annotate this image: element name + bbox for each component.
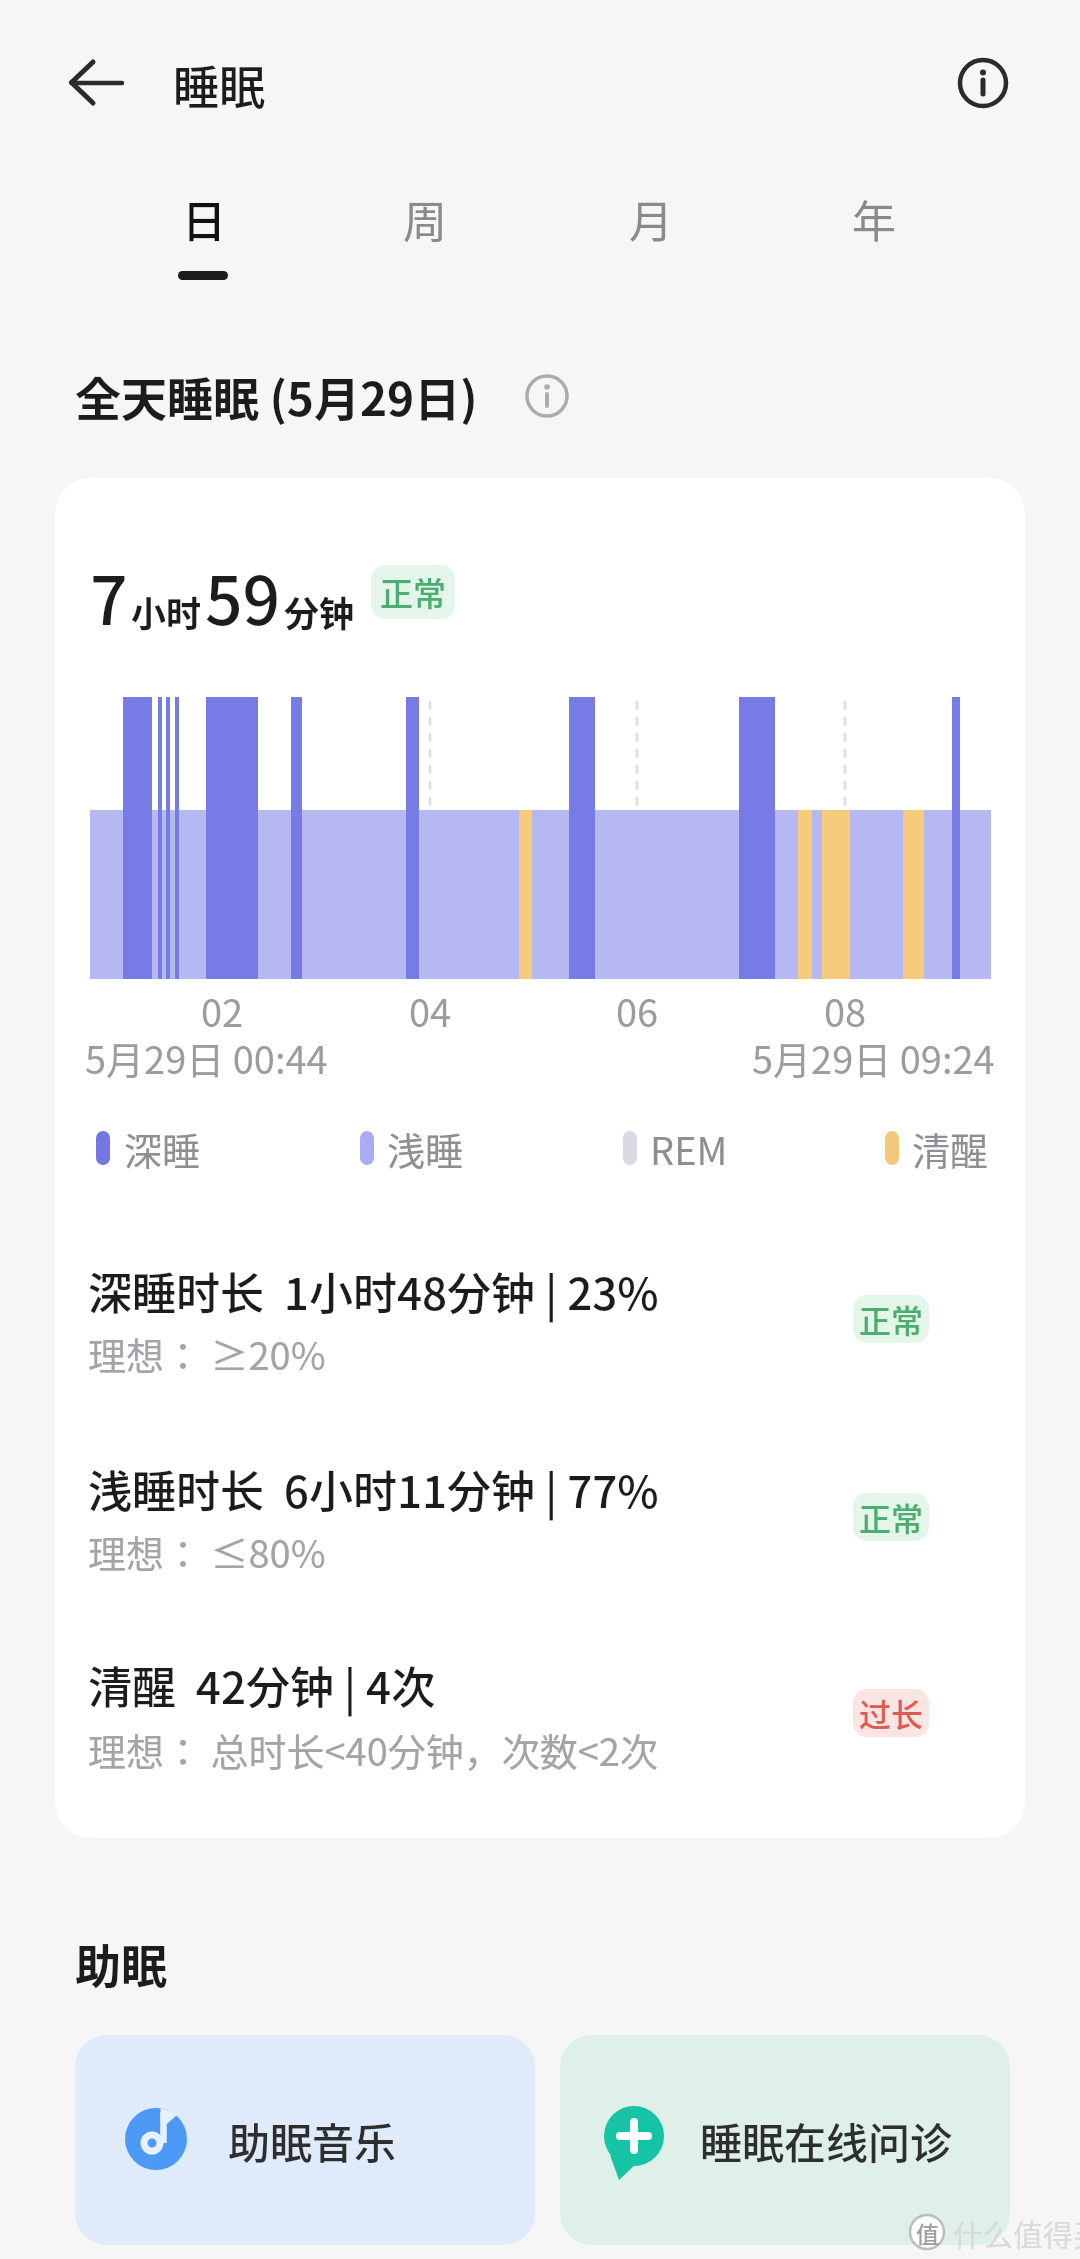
staticText: 小时	[131, 586, 202, 637]
staticText: 理想： 总时长<40分钟，次数<2次	[88, 1722, 658, 1777]
staticText: 59	[205, 548, 281, 644]
staticText: 5月29日 09:24	[752, 1030, 995, 1085]
staticText: 睡眠	[173, 51, 265, 118]
staticText: 助眠音乐	[228, 2110, 397, 2171]
staticText: 浅睡	[387, 1121, 464, 1176]
staticText: 睡眠在线问诊	[700, 2110, 953, 2171]
staticText: 深睡时长 1小时48分钟 | 23%	[88, 1259, 659, 1323]
staticText: 正常	[859, 1494, 924, 1540]
staticText: 分钟	[284, 586, 355, 637]
staticText: 清醒 42分钟 | 4次	[88, 1653, 436, 1717]
staticText: 月	[629, 187, 673, 251]
staticText: 理想： ≤80%	[88, 1524, 326, 1579]
staticText: 正常	[859, 1296, 924, 1342]
staticText: 理想： ≥20%	[88, 1326, 326, 1381]
staticText: 过长	[859, 1690, 924, 1736]
staticText: 02	[201, 983, 244, 1038]
staticText: 年	[852, 187, 896, 251]
staticText: 值	[916, 2216, 939, 2249]
staticText: 5月29日 00:44	[85, 1030, 328, 1085]
staticText: 清醒	[912, 1121, 989, 1176]
staticText: 浅睡时长 6小时11分钟 | 77%	[88, 1457, 659, 1521]
staticText: 7	[90, 548, 128, 644]
staticText: 全天睡眠 (5月29日)	[75, 363, 478, 430]
staticText: 04	[409, 983, 452, 1038]
staticText: 正常	[380, 568, 446, 616]
staticText: 助眠	[75, 1930, 167, 1997]
staticText: 什么值得买	[953, 2211, 1080, 2254]
staticText: 周	[403, 187, 447, 251]
staticText: 08	[824, 983, 867, 1038]
staticText: 日	[182, 187, 226, 251]
staticText: 深睡	[124, 1121, 201, 1176]
staticText: 06	[616, 983, 659, 1038]
staticText: REM	[650, 1121, 728, 1176]
